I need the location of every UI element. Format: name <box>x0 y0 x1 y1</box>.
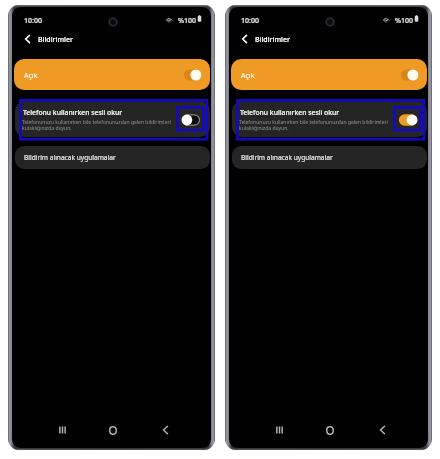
button[interactable]: Home <box>104 421 122 439</box>
staticText: Telefonunuzu kullanırken bile telefonunu… <box>239 119 388 132</box>
button[interactable]: Telefonu kullanırken sesli okur <box>15 101 210 137</box>
button[interactable]: Bildirim alınacak uygulamalar <box>232 146 427 169</box>
staticText: Bildirim alınacak uygulamalar <box>24 153 116 162</box>
button[interactable]: Telefonu kullanırken sesli okur anahtarı <box>397 113 419 127</box>
staticText: Telefonu kullanırken sesli okur <box>23 108 123 117</box>
button[interactable]: Açık <box>14 59 210 90</box>
staticText: %100 <box>395 16 413 26</box>
staticText: 10:00 <box>241 16 259 26</box>
staticText: Bildirimler <box>255 35 290 45</box>
staticText: Açık <box>241 71 255 81</box>
staticText: Telefonunuzu kullanırken bile telefonunu… <box>22 119 171 132</box>
button[interactable]: Bildirimleri aç/kapat <box>399 68 420 82</box>
staticText: Bildirim alınacak uygulamalar <box>241 153 333 162</box>
button[interactable]: Bildirimleri aç/kapat <box>182 68 203 82</box>
button[interactable]: Açık <box>231 59 427 90</box>
button[interactable]: Telefonu kullanırken sesli okur <box>232 101 427 137</box>
staticText: Telefonu kullanırken sesli okur <box>240 108 340 117</box>
staticText: Bildirimler <box>38 35 73 45</box>
button[interactable]: Back <box>156 421 174 439</box>
staticText: Açık <box>24 71 38 81</box>
button[interactable]: Back <box>373 421 391 439</box>
button[interactable]: Back <box>20 32 34 46</box>
staticText: 10:00 <box>24 16 42 26</box>
button[interactable]: Recents <box>270 421 288 439</box>
button[interactable]: Back <box>237 32 251 46</box>
button[interactable]: Telefonu kullanırken sesli okur anahtarı <box>180 113 202 127</box>
staticText: %100 <box>178 16 196 26</box>
button[interactable]: Recents <box>53 421 71 439</box>
button[interactable]: Bildirim alınacak uygulamalar <box>15 146 210 169</box>
button[interactable]: Home <box>321 421 339 439</box>
